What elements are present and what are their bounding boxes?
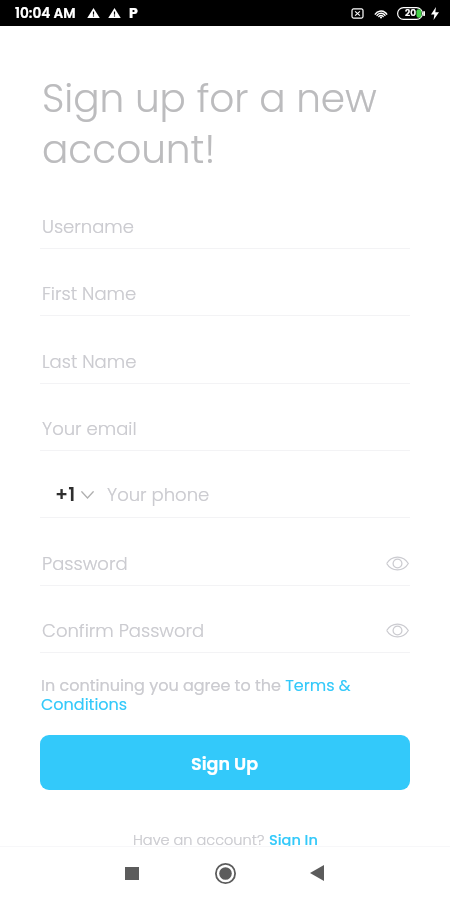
staticText: First Name bbox=[42, 281, 137, 306]
button[interactable]: Last Name bbox=[40, 332, 410, 384]
button[interactable]: Have an account? bbox=[133, 830, 318, 850]
staticText: Your email bbox=[42, 416, 137, 441]
button[interactable]: Your email bbox=[40, 399, 410, 451]
button[interactable]: Show password bbox=[382, 615, 412, 645]
staticText: Have an account? bbox=[133, 830, 269, 850]
button[interactable]: Password bbox=[40, 534, 410, 586]
staticText: Your phone bbox=[107, 482, 210, 507]
staticText: Username bbox=[42, 214, 134, 239]
button[interactable]: First Name bbox=[40, 264, 410, 316]
button[interactable]: Back bbox=[293, 849, 341, 897]
staticText: Sign up for a new account! bbox=[42, 71, 437, 177]
staticText: Confirm Password bbox=[42, 618, 205, 643]
staticText: Password bbox=[42, 551, 128, 576]
staticText: 10:04 AM bbox=[15, 4, 76, 23]
staticText: Last Name bbox=[42, 349, 137, 374]
staticText: Sign In bbox=[269, 830, 318, 850]
button[interactable]: Sign Up bbox=[40, 735, 410, 790]
button[interactable]: Home bbox=[201, 849, 249, 897]
button[interactable]: Recents bbox=[108, 849, 156, 897]
staticText: +1 bbox=[55, 481, 76, 508]
button[interactable]: Show password bbox=[382, 548, 412, 578]
button[interactable]: In continuing you agree to the Terms & C… bbox=[41, 674, 411, 715]
staticText: Sign Up bbox=[191, 752, 259, 777]
staticText: 20 bbox=[405, 7, 416, 20]
button[interactable]: Country code +1 bbox=[55, 469, 94, 520]
button[interactable]: Username bbox=[40, 197, 410, 249]
staticText: P bbox=[129, 3, 138, 23]
button[interactable]: Confirm Password bbox=[40, 601, 410, 653]
